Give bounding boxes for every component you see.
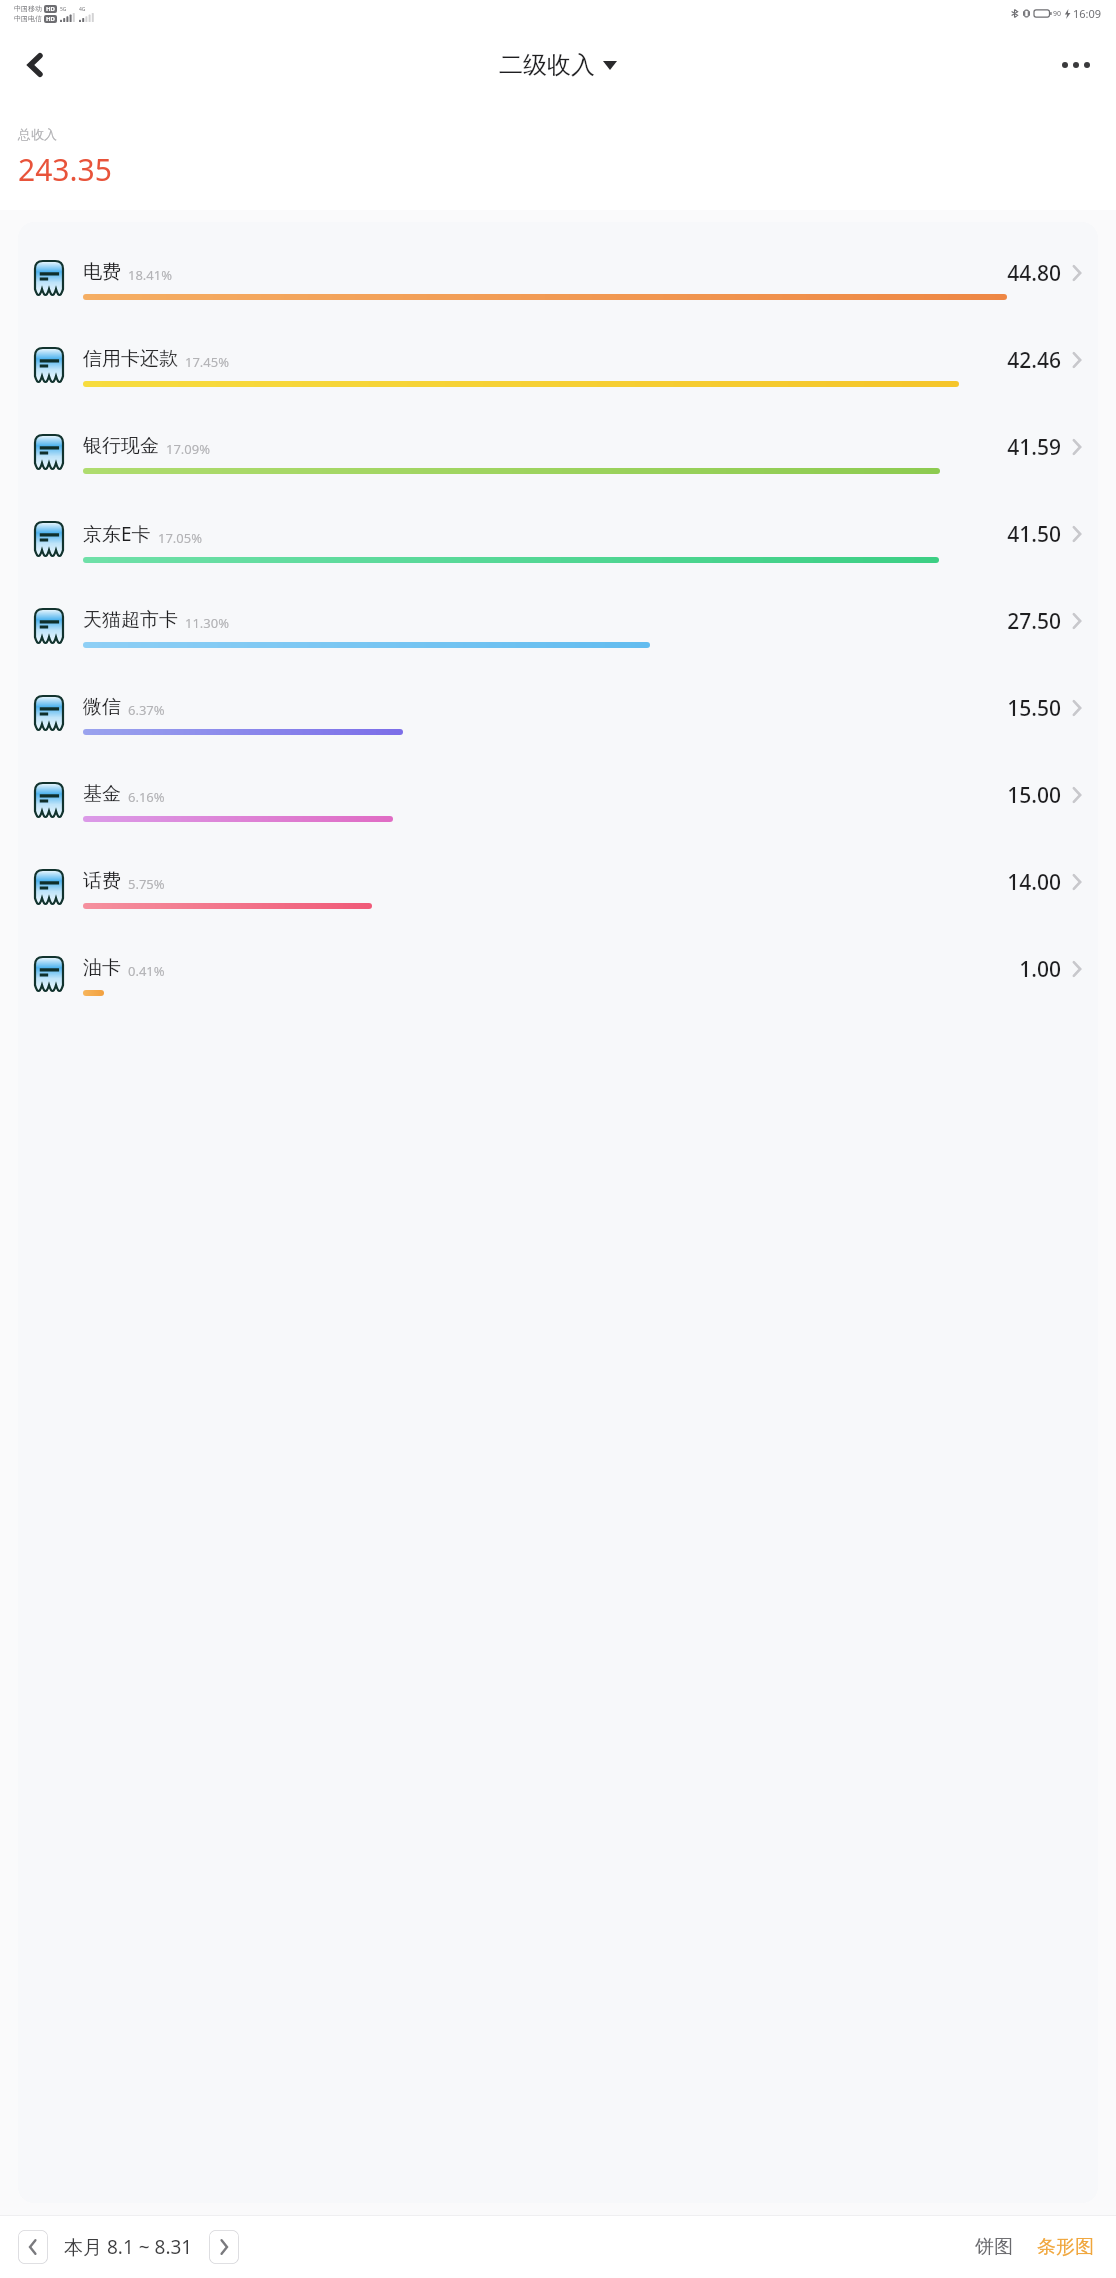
button[interactable]: 话费 [18,857,1098,944]
staticText: 44.80 [1007,259,1061,288]
staticText: 5.75% [128,875,165,893]
button[interactable]: 京东E卡 [18,509,1098,596]
button[interactable]: 电费 [18,248,1098,335]
button[interactable]: 饼图 [967,2227,1021,2267]
staticText: 总收入 [18,126,57,142]
staticText: HD [46,5,55,13]
staticText: 15.50 [1007,694,1061,723]
button[interactable]: 银行现金 [18,422,1098,509]
staticText: 1.00 [1019,955,1061,984]
button[interactable]: More options [1048,37,1104,93]
staticText: 0.41% [128,962,165,980]
staticText: 电费 [83,260,121,284]
staticText: 基金 [83,782,121,806]
staticText: 243.35 [18,149,112,190]
staticText: 6.16% [128,788,165,806]
staticText: 油卡 [83,956,121,980]
button[interactable]: Previous period [18,2230,48,2264]
button[interactable]: 天猫超市卡 [18,596,1098,683]
staticText: 17.05% [158,529,203,547]
staticText: 中国移动 [14,4,42,13]
staticText: 6.37% [128,701,165,719]
staticText: 15.00 [1007,781,1061,810]
button[interactable]: 微信 [18,683,1098,770]
staticText: 5G [60,6,67,13]
staticText: 本月 8.1 ~ 8.31 [64,2234,193,2260]
button[interactable]: Back [8,37,64,93]
staticText: 二级收入 [499,50,595,80]
staticText: 条形图 [1037,2235,1094,2259]
staticText: 京东E卡 [83,521,151,547]
staticText: 17.09% [166,440,211,458]
button[interactable]: 条形图 [1031,2227,1100,2267]
staticText: 微信 [83,695,121,719]
staticText: 银行现金 [83,434,159,458]
staticText: 中国电信 [14,14,42,23]
button[interactable]: 油卡 [18,944,1098,1031]
staticText: 17.45% [185,353,230,371]
staticText: 11.30% [185,614,230,632]
staticText: 饼图 [975,2235,1013,2259]
button[interactable]: 基金 [18,770,1098,857]
staticText: 90 [1053,9,1062,19]
staticText: 信用卡还款 [83,347,178,371]
staticText: 27.50 [1007,607,1061,636]
staticText: 话费 [83,869,121,893]
staticText: 4G [79,6,86,13]
staticText: HD [46,15,55,23]
button[interactable]: 信用卡还款 [18,335,1098,422]
staticText: 16:09 [1073,6,1102,21]
button[interactable]: Next period [209,2230,239,2264]
staticText: 41.50 [1007,520,1061,549]
staticText: 41.59 [1007,433,1061,462]
staticText: 42.46 [1007,346,1061,375]
staticText: 18.41% [128,266,173,284]
staticText: 14.00 [1007,868,1061,897]
button[interactable]: 二级收入 [499,50,617,80]
staticText: 天猫超市卡 [83,608,178,632]
